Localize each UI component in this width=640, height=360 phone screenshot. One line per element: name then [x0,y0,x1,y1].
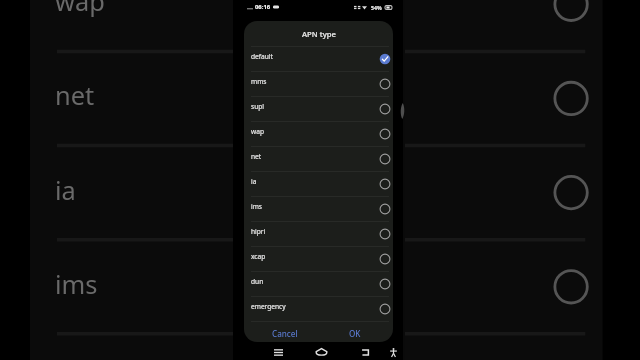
staticText: xcap [251,252,266,261]
button[interactable]: net [244,146,393,171]
staticText: wap [251,127,264,136]
button[interactable]: ia [244,171,393,196]
staticText: APN type [302,29,336,39]
button[interactable]: supl [244,96,393,121]
staticText: ia [251,177,257,186]
staticText: default [251,52,273,61]
button[interactable]: dun [244,271,393,296]
staticText: ims [251,202,263,211]
button[interactable]: OK [333,324,377,340]
button[interactable]: Accessibility [382,345,404,359]
staticText: dun [251,277,264,286]
button[interactable]: xcap [244,246,393,271]
staticText: net [251,152,262,161]
button[interactable]: ims [244,196,393,221]
staticText: 54% [371,4,382,11]
button[interactable]: Home [310,345,332,359]
button[interactable]: emergency [244,296,393,321]
button[interactable]: default [244,46,393,71]
staticText: net [55,78,95,113]
staticText: OK [349,328,361,339]
button[interactable]: Cancel [263,324,307,340]
button[interactable]: wap [244,121,393,146]
staticText: supl [251,102,264,111]
staticText: 06:16 [255,3,271,11]
button[interactable]: Back [354,345,376,359]
button[interactable]: mms [244,71,393,96]
staticText: wap [55,0,105,19]
button[interactable]: hipri [244,221,393,246]
staticText: hipri [251,227,266,236]
button[interactable]: Recents [267,345,289,359]
staticText: emergency [251,302,286,311]
staticText: Cancel [272,328,298,339]
staticText: mms [251,77,267,86]
staticText: ia [55,173,76,208]
staticText: ims [55,267,98,302]
